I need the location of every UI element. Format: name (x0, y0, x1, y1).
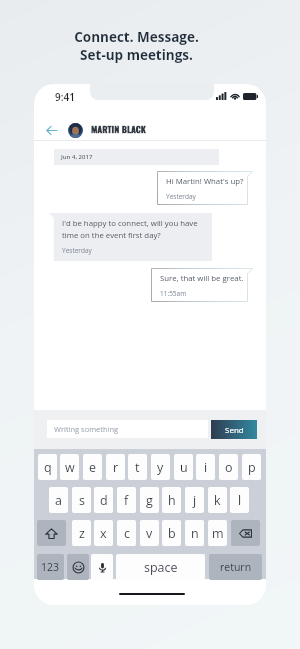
staticText: space (144, 559, 178, 576)
staticText: x (100, 525, 107, 542)
button[interactable]: 123 (37, 554, 64, 580)
staticText: f (124, 492, 129, 509)
staticText: Send (225, 424, 244, 435)
button[interactable]: g (140, 487, 159, 513)
staticText: o (225, 459, 233, 476)
button[interactable]: Emoji (67, 554, 89, 580)
staticText: return (220, 560, 252, 574)
staticText: a (55, 492, 62, 509)
button[interactable]: c (117, 520, 136, 546)
button[interactable]: l (230, 487, 249, 513)
staticText: g (146, 492, 153, 509)
button[interactable]: y (151, 454, 170, 480)
staticText: v (146, 525, 153, 542)
button[interactable]: a (49, 487, 68, 513)
staticText: Writing something (54, 424, 119, 434)
button[interactable]: MARTIN BLACK (91, 122, 146, 135)
staticText: I'd be happy to connect, will you have t… (62, 218, 198, 241)
staticText: Yesterday (62, 246, 92, 255)
button[interactable]: return (209, 554, 262, 580)
button[interactable]: q (38, 454, 57, 480)
button[interactable]: e (83, 454, 102, 480)
staticText: m (212, 525, 224, 542)
staticText: Sure, that will be great. (160, 273, 244, 284)
staticText: e (89, 459, 97, 476)
button[interactable]: x (94, 520, 113, 546)
button[interactable]: s (72, 487, 91, 513)
staticText: w (65, 459, 75, 476)
staticText: s (79, 492, 85, 509)
staticText: y (157, 459, 164, 476)
staticText: u (180, 459, 188, 476)
staticText: 11:55am (160, 289, 187, 298)
button[interactable]: z (72, 520, 91, 546)
button[interactable]: m (208, 520, 227, 546)
button[interactable]: space (116, 554, 205, 580)
button[interactable]: d (94, 487, 113, 513)
staticText: k (214, 492, 221, 509)
staticText: MARTIN BLACK (91, 122, 146, 135)
staticText: i (204, 459, 208, 476)
button[interactable]: h (162, 487, 181, 513)
staticText: Hi Martin! What's up? (166, 176, 244, 187)
button[interactable]: t (128, 454, 147, 480)
staticText: j (193, 492, 197, 509)
staticText: n (191, 525, 199, 542)
staticText: h (168, 492, 176, 509)
button[interactable]: i (196, 454, 215, 480)
button[interactable]: Back (41, 118, 61, 142)
button[interactable]: w (60, 454, 79, 480)
button[interactable]: f (117, 487, 136, 513)
button[interactable]: b (162, 520, 181, 546)
button[interactable]: v (140, 520, 159, 546)
staticText: q (44, 459, 52, 476)
button[interactable]: Voice input (91, 554, 113, 580)
staticText: r (113, 459, 119, 476)
button[interactable]: Send (211, 420, 257, 439)
button[interactable]: Shift (37, 520, 66, 546)
staticText: Connect. Message. (74, 28, 199, 46)
staticText: b (168, 525, 176, 542)
staticText: 123 (41, 560, 60, 574)
button[interactable]: Writing something (47, 420, 208, 438)
staticText: t (135, 459, 140, 476)
staticText: l (238, 492, 242, 509)
button[interactable]: k (208, 487, 227, 513)
button[interactable]: r (106, 454, 125, 480)
staticText: d (100, 492, 108, 509)
staticText: 9:41 (55, 90, 75, 104)
button[interactable]: u (174, 454, 193, 480)
button[interactable]: n (185, 520, 204, 546)
button[interactable]: o (219, 454, 238, 480)
staticText: c (124, 525, 130, 542)
button[interactable]: p (242, 454, 261, 480)
staticText: Jun 4, 2017 (61, 153, 93, 161)
staticText: p (248, 459, 256, 476)
staticText: Yesterday (166, 192, 196, 201)
button[interactable]: j (185, 487, 204, 513)
staticText: Set-up meetings. (80, 46, 193, 64)
staticText: z (79, 525, 85, 542)
button[interactable]: Backspace (231, 520, 260, 546)
